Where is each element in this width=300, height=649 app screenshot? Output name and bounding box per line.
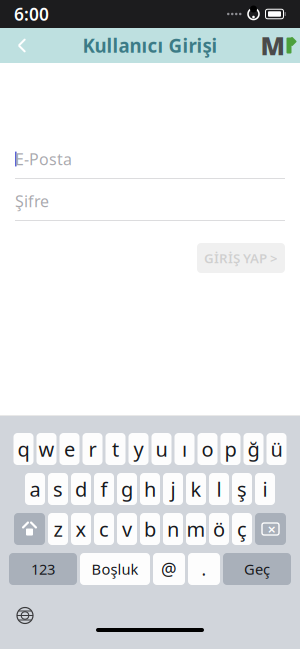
button[interactable]: @ [153,553,185,585]
button[interactable]: Back [0,28,44,63]
button[interactable]: q [13,433,33,465]
button[interactable]: x [71,513,91,545]
staticText: d [75,476,87,502]
staticText: ü [270,436,282,462]
button[interactable]: Change keyboard [8,602,42,628]
staticText: f [100,476,107,502]
button[interactable]: s [48,473,68,505]
staticText: u [155,436,167,462]
staticText: ç [237,516,247,542]
staticText: k [190,476,201,502]
button[interactable]: z [48,513,68,545]
button[interactable]: w [36,433,56,465]
button[interactable]: ç [232,513,252,545]
button[interactable]: o [197,433,217,465]
staticText: 6:00 [14,2,49,25]
staticText: ş [237,476,247,502]
button[interactable]: GİRİŞ YAP > [197,243,285,273]
button[interactable]: e [59,433,79,465]
staticText: c [99,516,109,542]
staticText: ı [182,436,187,462]
staticText: ö [213,516,225,542]
staticText: Geç [244,559,270,579]
staticText: o [201,436,213,462]
button[interactable]: a [25,473,45,505]
staticText: i [262,476,267,502]
button[interactable]: u [151,433,171,465]
button[interactable]: m [186,513,206,545]
staticText: 123 [31,559,55,579]
button[interactable]: t [105,433,125,465]
staticText: j [170,476,175,502]
button[interactable]: ğ [243,433,263,465]
button[interactable]: r [82,433,102,465]
button[interactable]: ö [209,513,229,545]
button[interactable]: y [128,433,148,465]
button[interactable]: l [209,473,229,505]
staticText: ğ [247,436,259,462]
button[interactable]: i [255,473,275,505]
staticText: s [53,476,63,502]
button[interactable]: p [220,433,240,465]
staticText: m [186,516,205,542]
button[interactable]: g [117,473,137,505]
staticText: a [29,476,40,502]
button[interactable]: f [94,473,114,505]
staticText: x [75,516,86,542]
button[interactable]: Shift [14,513,45,545]
staticText: h [144,476,156,502]
staticText: l [216,476,221,502]
button[interactable]: h [140,473,160,505]
staticText: t [112,436,119,462]
staticText: w [38,436,54,462]
staticText: E-Posta [15,148,72,170]
button[interactable]: k [186,473,206,505]
button[interactable]: d [71,473,91,505]
staticText: p [224,436,236,462]
button[interactable]: c [94,513,114,545]
staticText: e [64,436,75,462]
staticText: × [267,519,275,539]
button[interactable]: Boşluk [80,553,150,585]
button[interactable]: ü [266,433,286,465]
button[interactable]: v [117,513,137,545]
staticText: q [17,436,29,462]
button[interactable]: Geç [223,553,291,585]
button[interactable]: ş [232,473,252,505]
staticText: GİRİŞ YAP > [204,249,278,267]
button[interactable]: ı [174,433,194,465]
staticText: z [53,516,62,542]
staticText: v [122,516,132,542]
staticText: r [88,436,96,462]
staticText: M [260,29,284,62]
staticText: g [121,476,133,502]
button[interactable]: MP logo [256,28,300,63]
staticText: Kullanıcı Girişi [82,33,217,58]
staticText: @ [161,557,177,580]
staticText: n [167,516,179,542]
button[interactable]: b [140,513,160,545]
staticText: Şifre [15,190,49,212]
staticText: b [144,516,156,542]
button[interactable]: Delete [255,513,286,545]
staticText: Boşluk [91,559,138,579]
staticText: . [201,557,206,580]
button[interactable]: 123 [9,553,77,585]
staticText: y [133,436,143,462]
button[interactable]: n [163,513,183,545]
button[interactable]: . [188,553,220,585]
button[interactable]: j [163,473,183,505]
